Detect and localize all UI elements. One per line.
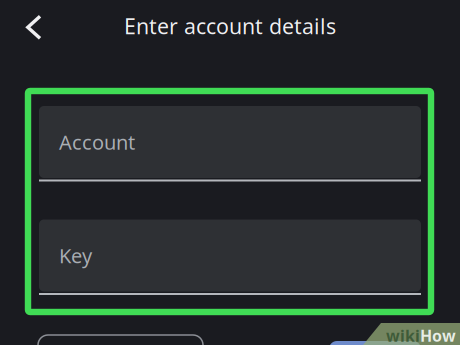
staticText: Key (59, 242, 92, 269)
staticText: How (420, 325, 456, 345)
staticText: Enter account details (124, 12, 336, 40)
button[interactable]: Account (39, 106, 421, 181)
button[interactable] (38, 335, 203, 345)
button[interactable]: Back (13, 6, 55, 48)
button[interactable]: Key (39, 219, 421, 295)
staticText: wiki (386, 325, 420, 345)
staticText: Account (59, 129, 135, 155)
